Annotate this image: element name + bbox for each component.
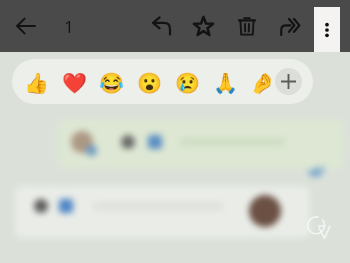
staticText: 👍 (24, 71, 49, 94)
button[interactable]: 👍 (23, 69, 49, 95)
button[interactable]: 🤌 (249, 69, 275, 95)
staticText: 🤌 (250, 71, 275, 94)
button[interactable]: More options (314, 7, 340, 52)
button[interactable]: Forward (269, 0, 311, 52)
button[interactable]: ❤️ (61, 69, 87, 95)
staticText: 😂 (99, 71, 124, 94)
staticText: 😮 (137, 71, 162, 94)
button[interactable]: 🙏 (212, 69, 238, 95)
button[interactable]: Back (6, 0, 46, 52)
button[interactable]: Star (182, 0, 224, 52)
button[interactable]: 😢 (174, 69, 200, 95)
button[interactable]: 😮 (136, 69, 162, 95)
button[interactable]: More reactions (275, 68, 302, 95)
button[interactable]: 😂 (98, 69, 124, 95)
button[interactable]: Delete (226, 0, 268, 52)
staticText: ❤️ (62, 71, 87, 94)
button[interactable]: Reply (141, 0, 183, 52)
staticText: 🙏 (213, 71, 238, 94)
staticText: 😢 (175, 71, 200, 94)
staticText: 1 (64, 15, 74, 38)
